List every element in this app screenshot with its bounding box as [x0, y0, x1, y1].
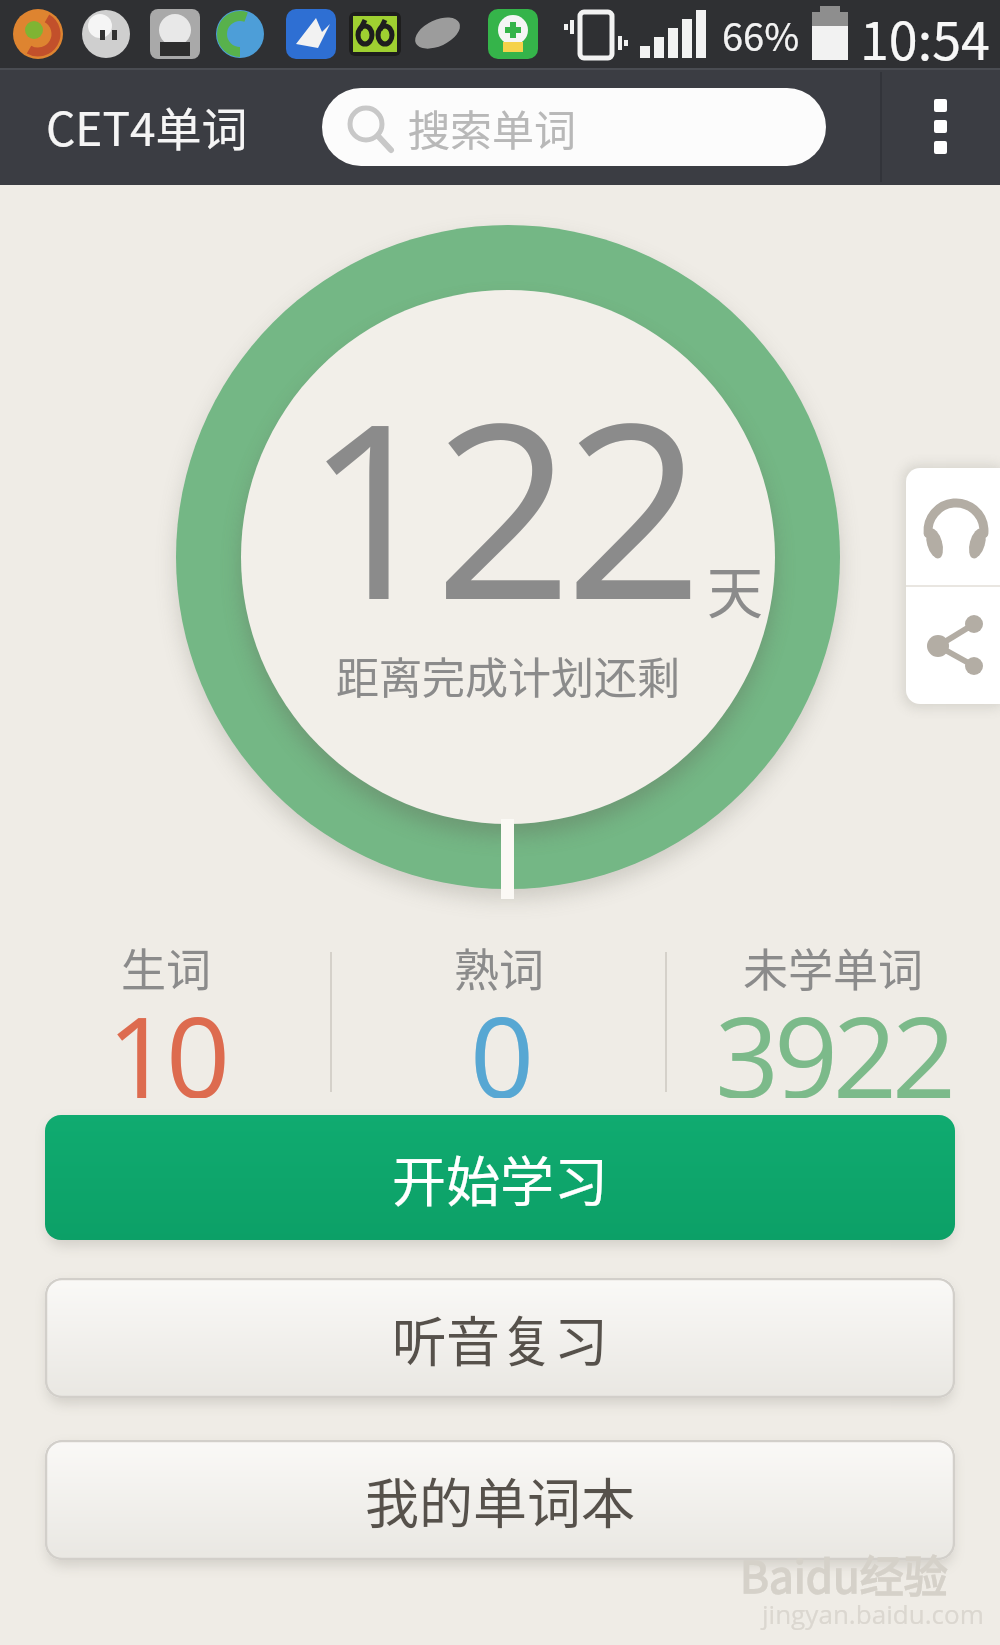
- button[interactable]: [906, 587, 1000, 704]
- staticText: jingyan.baidu.com: [762, 1596, 984, 1631]
- staticText: 我的单词本: [365, 1461, 635, 1539]
- button[interactable]: 搜索单词: [322, 88, 826, 166]
- staticText: 10: [107, 978, 226, 1098]
- staticText: 开始学习: [392, 1139, 608, 1217]
- staticText: 天: [707, 548, 763, 623]
- staticText: 搜索单词: [408, 97, 577, 158]
- staticText: 熟词: [454, 935, 545, 995]
- staticText: 122: [304, 340, 696, 670]
- button[interactable]: 开始学习: [45, 1115, 955, 1240]
- staticText: CET4单词: [46, 93, 248, 160]
- staticText: 生词: [121, 935, 212, 995]
- staticText: 66%: [722, 7, 800, 62]
- button[interactable]: 我的单词本: [45, 1440, 955, 1560]
- staticText: Baidu经验: [740, 1542, 948, 1606]
- staticText: 3922: [715, 978, 952, 1098]
- staticText: 0: [470, 978, 530, 1098]
- button[interactable]: 听音复习: [45, 1278, 955, 1398]
- staticText: 未学单词: [743, 935, 924, 995]
- staticText: 10:54: [860, 0, 990, 68]
- button[interactable]: [906, 468, 1000, 585]
- button[interactable]: [895, 68, 985, 185]
- staticText: 听音复习: [392, 1299, 608, 1377]
- staticText: 距离完成计划还剩: [336, 644, 680, 706]
